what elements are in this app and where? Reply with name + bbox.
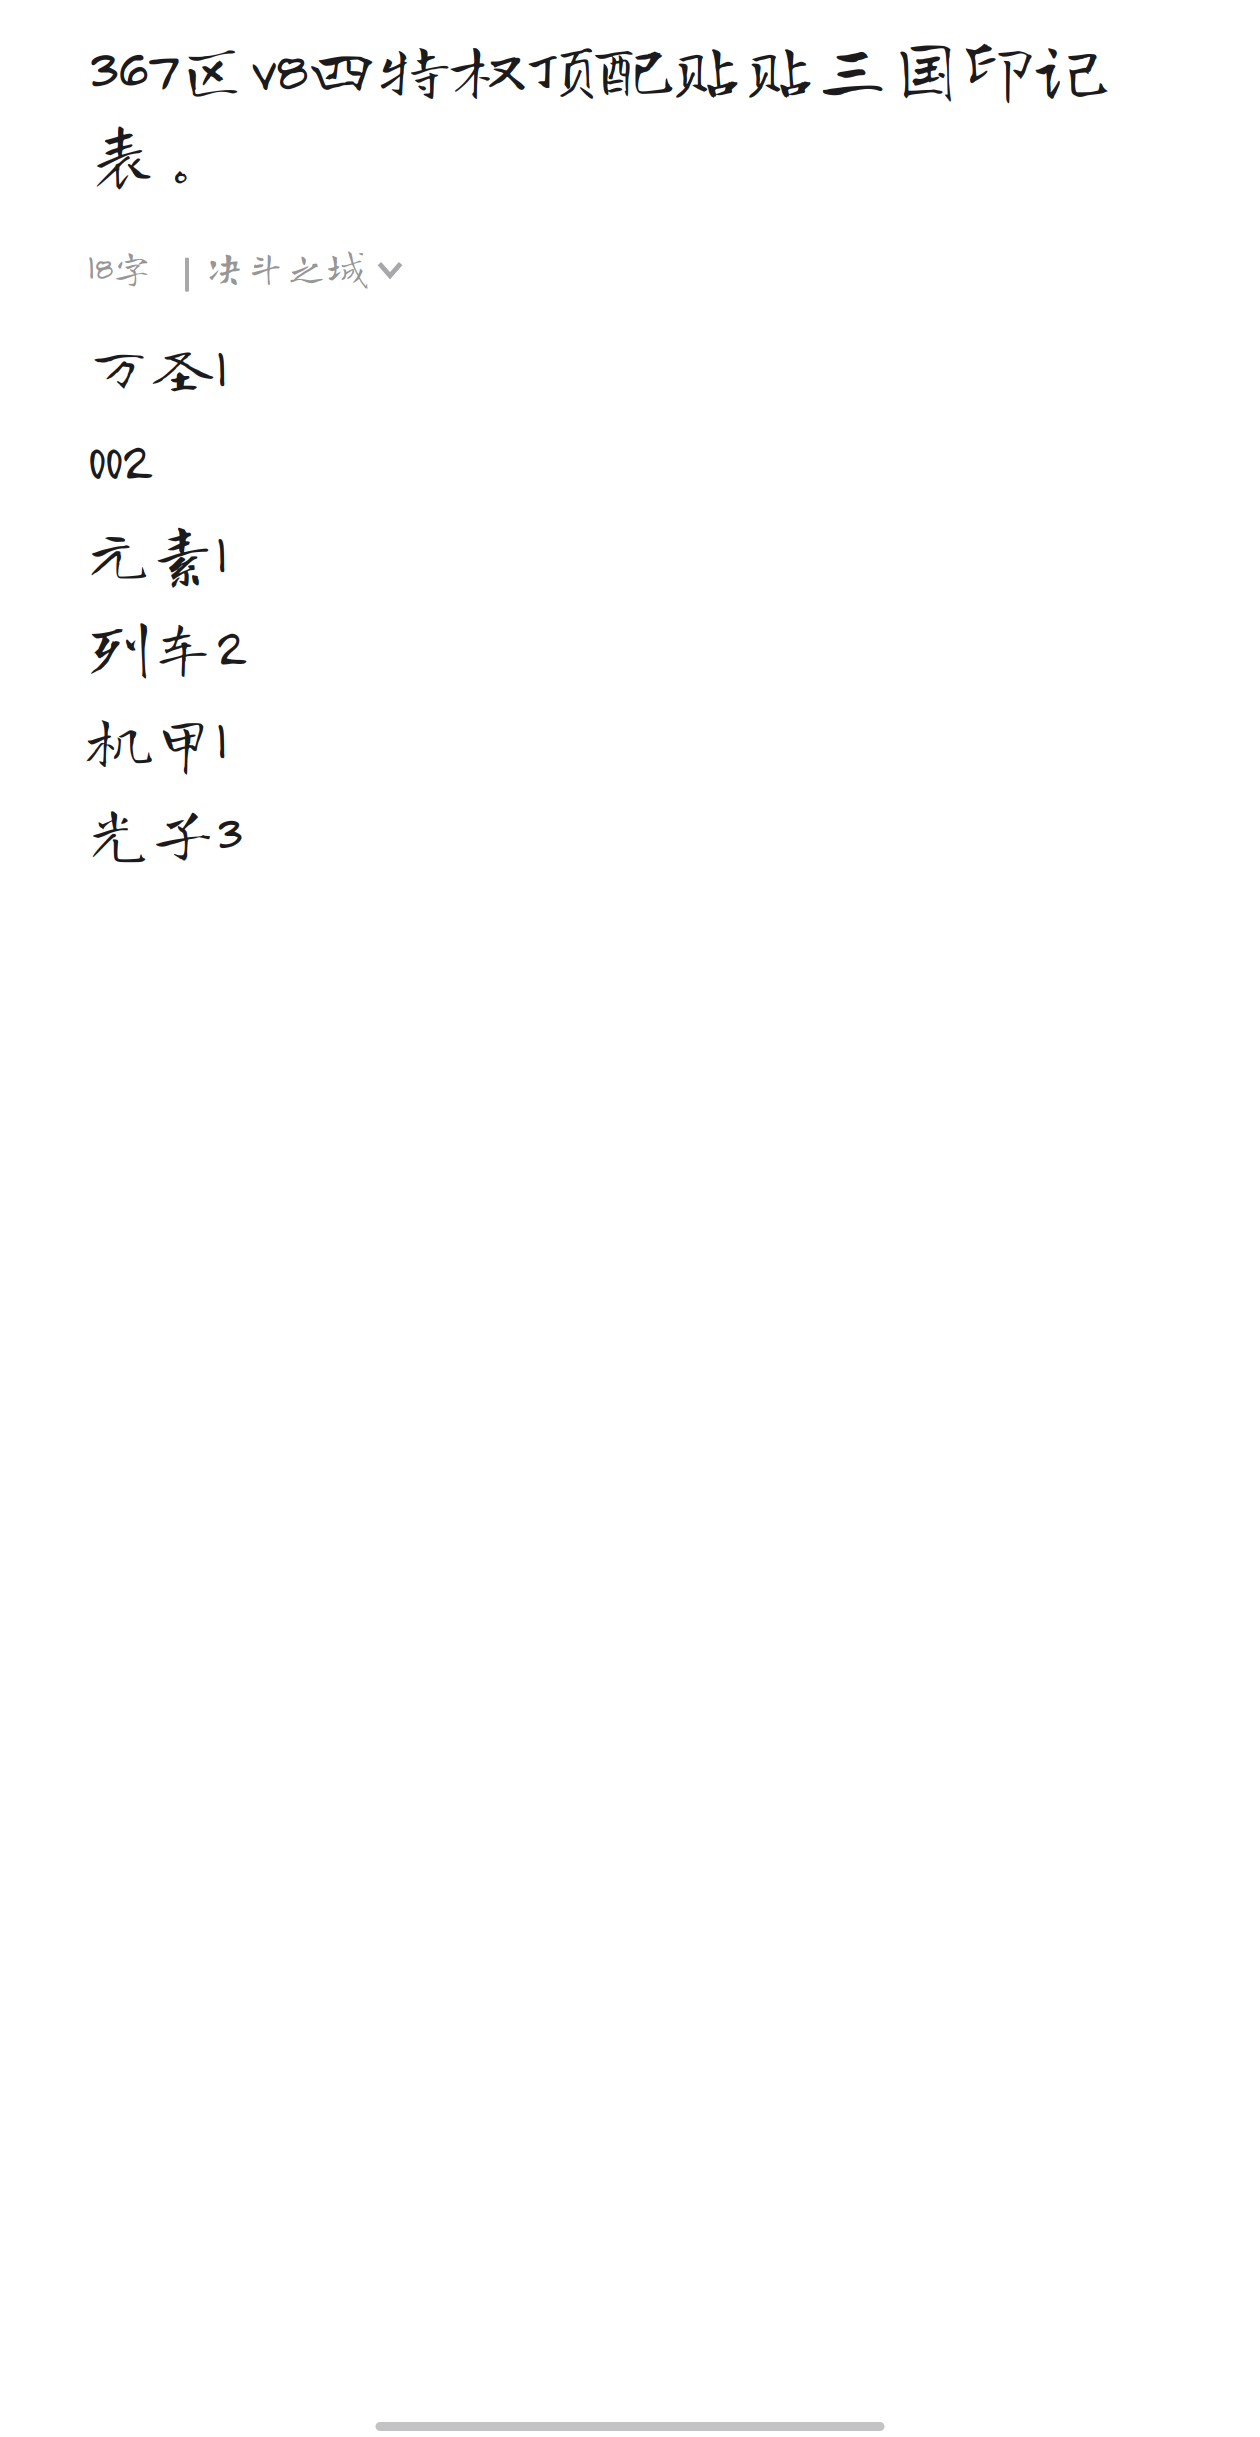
staticText: 决斗之城 — [204, 246, 368, 287]
button[interactable]: 万圣1 — [87, 335, 1127, 864]
staticText: 002 — [87, 428, 151, 492]
staticText: 元素1 — [87, 521, 226, 585]
staticText: 光子3 — [87, 800, 241, 864]
staticText: 18字 — [87, 246, 152, 287]
staticText: 机甲1 — [87, 707, 226, 771]
staticText: 367区v8四特权顶配贴贴三国印记表。 — [87, 31, 1108, 189]
staticText: 万圣1 — [87, 335, 226, 399]
button[interactable]: 18字 — [87, 245, 1127, 289]
staticText: 列车2 — [87, 614, 245, 678]
button[interactable]: 367区v8四特权顶配贴贴三国印记表。 — [87, 31, 1127, 189]
